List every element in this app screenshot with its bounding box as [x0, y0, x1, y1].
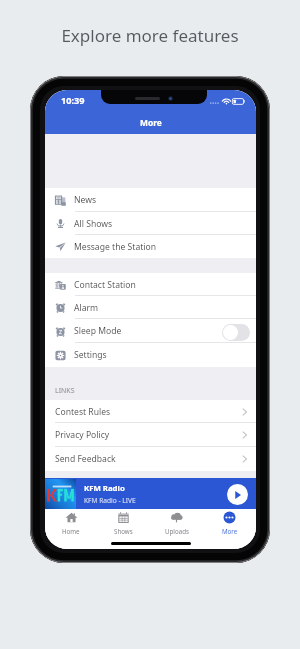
staticText: 10:39: [61, 94, 85, 107]
staticText: Message the Station: [74, 241, 157, 253]
staticText: All Shows: [74, 218, 113, 230]
staticText: Alarm: [74, 302, 99, 314]
button[interactable]: Home: [45, 511, 97, 535]
button[interactable]: Settings: [45, 343, 256, 367]
staticText: News: [74, 194, 97, 206]
staticText: Contact Station: [74, 279, 136, 291]
button[interactable]: All Shows: [45, 212, 256, 235]
button[interactable]: Send Feedback: [45, 447, 256, 471]
button[interactable]: Message the Station: [45, 235, 256, 258]
button[interactable]: KFM Radio: [45, 478, 256, 510]
staticText: KFM Radio: [84, 483, 125, 494]
staticText: Send Feedback: [55, 453, 116, 465]
staticText: Explore more features: [0, 24, 300, 47]
staticText: Privacy Policy: [55, 429, 110, 441]
staticText: Sleep Mode: [74, 325, 122, 337]
staticText: More: [222, 527, 238, 535]
staticText: Home: [62, 527, 80, 535]
staticText: Contest Rules: [55, 406, 111, 418]
button[interactable]: Contest Rules: [45, 400, 256, 423]
staticText: Shows: [114, 527, 133, 535]
button[interactable]: Play: [227, 484, 248, 505]
staticText: LINKS: [55, 386, 75, 396]
button[interactable]: Uploads: [150, 511, 203, 535]
staticText: Uploads: [165, 527, 189, 535]
button[interactable]: Shows: [97, 511, 150, 535]
button[interactable]: News: [45, 188, 256, 212]
button[interactable]: Contact Station: [45, 273, 256, 296]
staticText: More: [140, 117, 162, 128]
button[interactable]: Sleep Mode: [45, 319, 256, 343]
staticText: Settings: [74, 349, 107, 361]
button[interactable]: Privacy Policy: [45, 423, 256, 447]
staticText: KFM Radio - LIVE: [84, 496, 136, 505]
button[interactable]: More: [203, 511, 256, 535]
button[interactable]: Alarm: [45, 296, 256, 319]
